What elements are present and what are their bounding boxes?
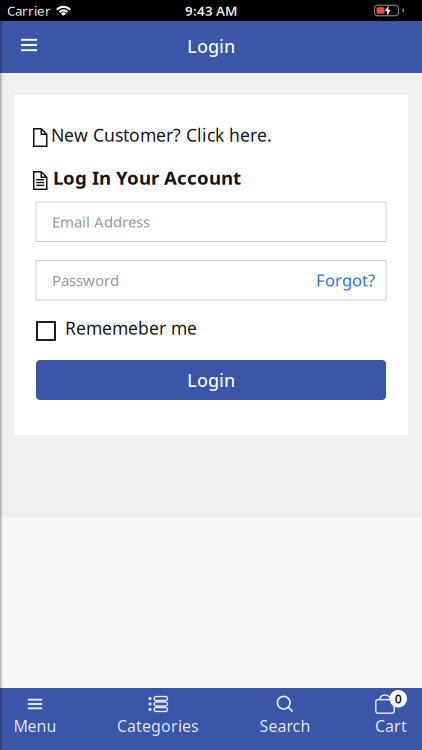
staticText: Search: [259, 715, 310, 737]
staticText: Password: [52, 270, 119, 290]
staticText: Categories: [117, 715, 199, 737]
staticText: 0: [395, 690, 402, 707]
staticText: 9:43 AM: [185, 1, 237, 20]
button[interactable]: Rememeber me: [37, 322, 389, 340]
button[interactable]: Login: [33, 360, 389, 400]
staticText: Email Address: [52, 212, 150, 232]
staticText: New Customer? Click here.: [51, 123, 272, 147]
button[interactable]: Menu: [0, 688, 70, 750]
staticText: Carrier: [7, 1, 51, 20]
staticText: Menu: [13, 715, 56, 737]
staticText: Cart: [375, 715, 407, 737]
staticText: Rememeber me: [65, 316, 197, 340]
staticText: Forgot?: [316, 269, 375, 291]
button[interactable]: New Customer? Click here.: [33, 128, 389, 147]
button[interactable]: Forgot?: [316, 269, 386, 291]
button[interactable]: Cart: [360, 688, 422, 750]
staticText: Log In Your Account: [53, 165, 241, 190]
button[interactable]: Menu: [0, 39, 37, 55]
button[interactable]: Search: [245, 688, 325, 750]
button[interactable]: Categories: [108, 688, 208, 750]
staticText: Login: [187, 34, 235, 58]
staticText: Login: [187, 368, 235, 392]
